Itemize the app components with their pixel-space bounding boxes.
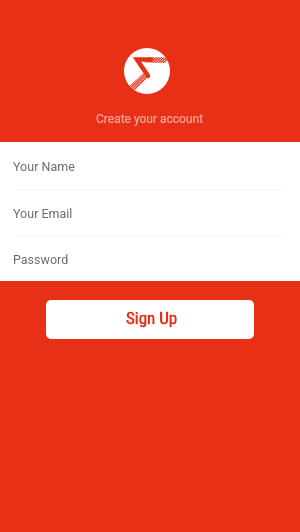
staticText: Create your account — [96, 112, 204, 126]
button[interactable]: Password — [0, 236, 300, 281]
staticText: Your Name — [13, 159, 75, 174]
button[interactable]: Your Name — [0, 142, 300, 190]
button[interactable]: Sign Up — [46, 300, 254, 339]
button[interactable]: Your Email — [0, 190, 300, 236]
staticText: Password — [13, 252, 69, 267]
staticText: Sign Up — [126, 308, 178, 328]
staticText: Your Email — [13, 206, 73, 221]
other: App logo — [124, 48, 170, 94]
